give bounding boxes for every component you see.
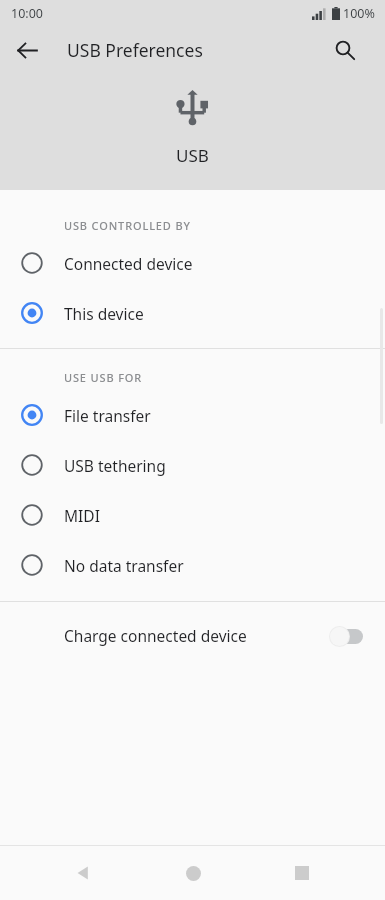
button[interactable]: MIDI [0,490,385,540]
button[interactable]: Home [166,846,220,900]
button[interactable]: Back [7,30,47,70]
button[interactable]: File transfer [0,390,385,440]
button[interactable]: Connected device [0,238,385,288]
staticText: Charge connected device [64,625,329,646]
staticText: 100% [343,5,375,22]
button[interactable]: Back [56,846,110,900]
button[interactable]: Charge connected device [0,602,385,669]
staticText: USB tethering [64,455,166,476]
staticText: This device [64,303,144,324]
staticText: File transfer [64,405,151,426]
staticText: USB Preferences [67,38,203,62]
staticText: Connected device [64,253,193,274]
button[interactable]: Search [325,30,365,70]
staticText: 10:00 [11,5,43,22]
staticText: No data transfer [64,555,184,576]
staticText: MIDI [64,505,100,526]
staticText: USB CONTROLLED BY [64,218,191,233]
button[interactable]: No data transfer [0,540,385,590]
button[interactable]: USB tethering [0,440,385,490]
button[interactable]: Recent apps [275,846,329,900]
button[interactable]: This device [0,288,385,338]
staticText: USE USB FOR [64,370,143,385]
staticText: USB [176,144,209,167]
